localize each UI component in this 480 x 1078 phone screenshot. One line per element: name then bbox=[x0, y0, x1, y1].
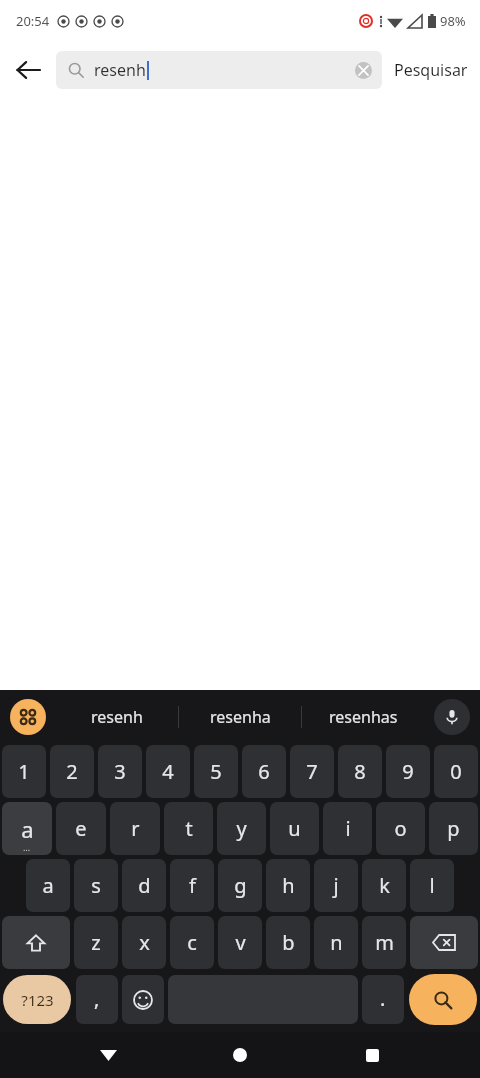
staticText: 9 bbox=[402, 758, 414, 785]
button[interactable]: o bbox=[376, 802, 425, 855]
staticText: 4 bbox=[162, 758, 174, 785]
staticText: k bbox=[379, 872, 390, 899]
button[interactable]: v bbox=[218, 916, 262, 969]
staticText: g bbox=[234, 872, 247, 899]
button[interactable]: Vírgula bbox=[76, 975, 118, 1024]
button[interactable]: Pesquisar bbox=[394, 59, 468, 81]
staticText: ?123 bbox=[21, 990, 54, 1010]
button[interactable]: h bbox=[266, 859, 310, 912]
button[interactable]: e bbox=[56, 802, 106, 855]
staticText: u bbox=[288, 815, 301, 842]
staticText: b bbox=[282, 929, 295, 956]
staticText: f bbox=[189, 872, 196, 899]
button[interactable]: z bbox=[74, 916, 118, 969]
staticText: 7 bbox=[306, 758, 318, 785]
staticText: n bbox=[330, 929, 343, 956]
staticText: d bbox=[138, 872, 151, 899]
staticText: resenhas bbox=[329, 706, 398, 728]
staticText: o bbox=[394, 815, 407, 842]
button[interactable]: 2 bbox=[50, 745, 94, 798]
button[interactable]: a bbox=[2, 802, 52, 855]
button[interactable]: Menu do teclado bbox=[0, 690, 56, 743]
button[interactable]: f bbox=[170, 859, 214, 912]
button[interactable]: l bbox=[410, 859, 454, 912]
button[interactable]: Recentes bbox=[348, 1032, 396, 1078]
staticText: m bbox=[375, 929, 394, 956]
staticText: … bbox=[23, 841, 31, 853]
button[interactable]: g bbox=[218, 859, 262, 912]
button[interactable]: resenhas bbox=[302, 690, 424, 743]
button[interactable]: Voltar bbox=[84, 1032, 132, 1078]
button[interactable]: x bbox=[122, 916, 166, 969]
staticText: v bbox=[235, 929, 246, 956]
staticText: y bbox=[236, 815, 247, 842]
button[interactable]: Apagar bbox=[410, 916, 478, 969]
staticText: . bbox=[380, 985, 386, 1012]
button[interactable]: t bbox=[164, 802, 213, 855]
button[interactable]: k bbox=[362, 859, 406, 912]
button[interactable]: 9 bbox=[386, 745, 430, 798]
staticText: s bbox=[91, 872, 101, 899]
button[interactable]: a bbox=[26, 859, 70, 912]
staticText: 20:54 bbox=[16, 12, 50, 30]
button[interactable]: 8 bbox=[338, 745, 382, 798]
staticText: e bbox=[75, 815, 87, 842]
staticText: resenh bbox=[94, 59, 146, 81]
button[interactable]: j bbox=[314, 859, 358, 912]
button[interactable]: 4 bbox=[146, 745, 190, 798]
staticText: resenha bbox=[210, 706, 271, 728]
button[interactable]: r bbox=[110, 802, 160, 855]
button[interactable]: c bbox=[170, 916, 214, 969]
staticText: z bbox=[91, 929, 101, 956]
button[interactable]: resenh bbox=[56, 51, 382, 89]
button[interactable]: resenha bbox=[179, 690, 301, 743]
button[interactable]: Emoji bbox=[122, 975, 164, 1024]
button[interactable]: Shift bbox=[2, 916, 70, 969]
staticText: r bbox=[131, 815, 140, 842]
staticText: 1 bbox=[18, 758, 30, 785]
button[interactable]: 3 bbox=[98, 745, 142, 798]
staticText: 0 bbox=[450, 758, 462, 785]
staticText: , bbox=[94, 985, 100, 1012]
button[interactable]: Início bbox=[216, 1032, 264, 1078]
button[interactable]: resenh bbox=[56, 690, 178, 743]
button[interactable]: Pesquisar bbox=[409, 974, 477, 1025]
staticText: j bbox=[333, 872, 339, 899]
button[interactable]: u bbox=[270, 802, 319, 855]
button[interactable]: ?123 bbox=[3, 975, 71, 1024]
button[interactable]: 0 bbox=[434, 745, 478, 798]
button[interactable]: Ponto bbox=[362, 975, 404, 1024]
staticText: 6 bbox=[258, 758, 270, 785]
button[interactable]: d bbox=[122, 859, 166, 912]
staticText: 98% bbox=[440, 12, 466, 30]
staticText: 2 bbox=[66, 758, 78, 785]
button[interactable]: b bbox=[266, 916, 310, 969]
staticText: l bbox=[429, 872, 435, 899]
staticText: Pesquisar bbox=[394, 59, 468, 81]
staticText: 8 bbox=[354, 758, 366, 785]
button[interactable]: i bbox=[323, 802, 372, 855]
staticText: 3 bbox=[114, 758, 126, 785]
button[interactable]: Entrada por voz bbox=[424, 690, 480, 743]
staticText: x bbox=[139, 929, 150, 956]
staticText: c bbox=[187, 929, 197, 956]
staticText: 5 bbox=[210, 758, 222, 785]
button[interactable]: y bbox=[217, 802, 266, 855]
button[interactable]: p bbox=[429, 802, 478, 855]
button[interactable]: s bbox=[74, 859, 118, 912]
staticText: a bbox=[21, 814, 34, 844]
staticText: p bbox=[447, 815, 460, 842]
button[interactable]: 7 bbox=[290, 745, 334, 798]
staticText: h bbox=[282, 872, 295, 899]
button[interactable]: 5 bbox=[194, 745, 238, 798]
staticText: t bbox=[185, 815, 193, 842]
staticText: a bbox=[42, 872, 54, 899]
button[interactable]: n bbox=[314, 916, 358, 969]
button[interactable]: 6 bbox=[242, 745, 286, 798]
button[interactable]: m bbox=[362, 916, 406, 969]
button[interactable]: 1 bbox=[2, 745, 46, 798]
button[interactable]: Limpar bbox=[344, 51, 382, 89]
button[interactable]: Voltar bbox=[0, 42, 56, 98]
staticText: i bbox=[345, 815, 351, 842]
